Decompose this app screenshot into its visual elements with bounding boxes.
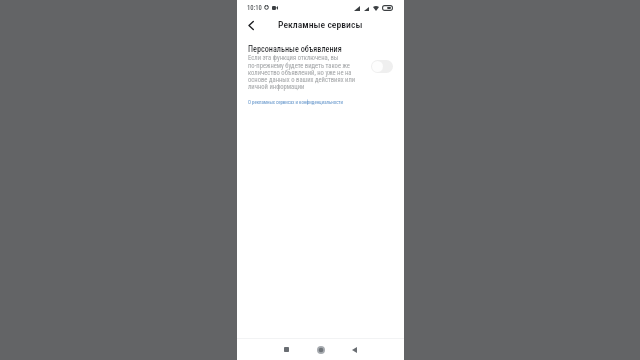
button[interactable]: Recent apps — [276, 339, 297, 360]
button[interactable]: О рекламных сервисах и конфиденциальност… — [248, 100, 343, 106]
staticText: 10:10 — [247, 4, 262, 12]
staticText: Если эта функция отключена, вы по‑прежне… — [248, 54, 356, 90]
button[interactable]: Back — [344, 339, 365, 360]
button[interactable]: Home — [310, 339, 331, 360]
staticText: Рекламные сервисы — [278, 19, 363, 30]
button[interactable]: Personalised ads toggle, off — [371, 60, 393, 73]
button[interactable]: Back — [241, 15, 261, 35]
staticText: О рекламных сервисах и конфиденциальност… — [248, 100, 343, 106]
staticText: Персональные объявления — [248, 44, 342, 54]
